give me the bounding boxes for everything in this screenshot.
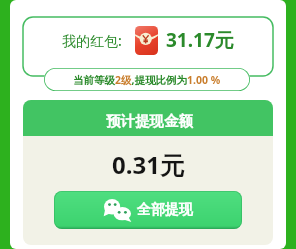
staticText: 我的红包:	[62, 31, 122, 50]
button[interactable]: 全部提现	[54, 191, 242, 229]
staticText: 预计提现金额	[106, 112, 193, 130]
staticText: 0.31元	[112, 148, 184, 181]
staticText: 31.17元	[166, 27, 234, 53]
staticText: 当前等级2级,提现比例为1.00 %	[73, 73, 221, 87]
staticText: 全部提现	[137, 201, 193, 219]
